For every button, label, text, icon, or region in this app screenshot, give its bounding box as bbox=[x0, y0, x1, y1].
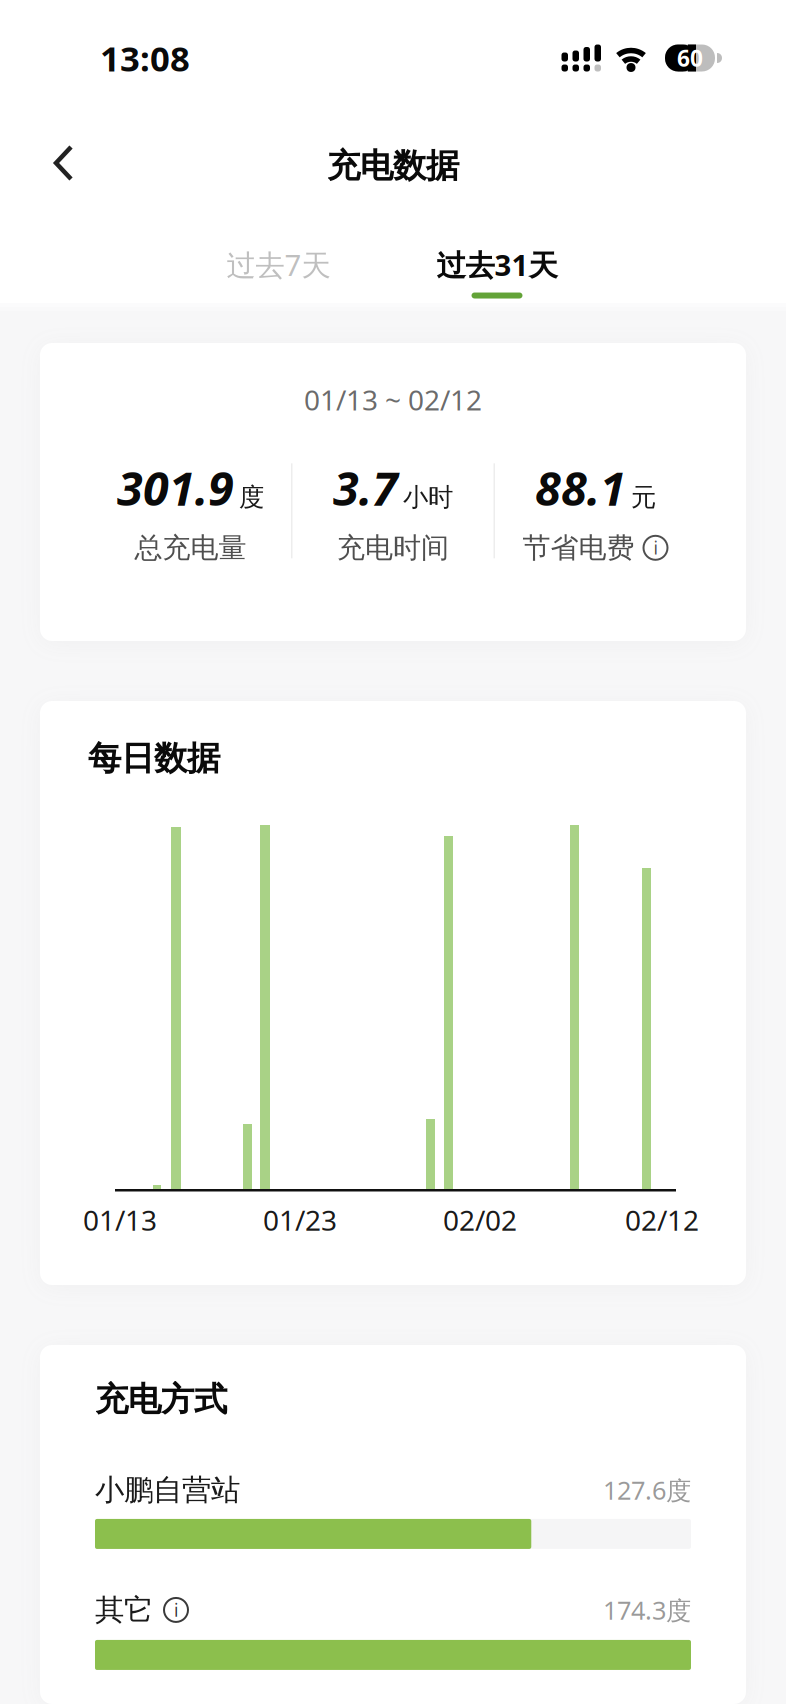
staticText: 3.7 bbox=[333, 457, 398, 519]
staticText: 301.9 bbox=[117, 457, 234, 519]
staticText: 其它 bbox=[95, 1592, 153, 1628]
button[interactable]: i bbox=[163, 1597, 189, 1623]
staticText: 13:08 bbox=[100, 35, 190, 81]
staticText: 充电方式 bbox=[95, 1379, 227, 1420]
staticText: i bbox=[174, 1598, 178, 1621]
staticText: 节省电费 bbox=[522, 531, 634, 565]
staticText: 02/12 bbox=[625, 1201, 699, 1239]
button[interactable]: 过去31天 bbox=[436, 245, 557, 284]
staticText: 小时 bbox=[403, 482, 453, 513]
staticText: 每日数据 bbox=[88, 738, 220, 779]
staticText: 174.3度 bbox=[603, 1593, 691, 1627]
staticText: 过去7天 bbox=[226, 245, 330, 284]
staticText: 度 bbox=[239, 482, 264, 513]
staticText: 充电数据 bbox=[327, 145, 459, 186]
staticText: 小鹏自营站 bbox=[95, 1472, 240, 1508]
staticText: 01/13 bbox=[83, 1201, 157, 1239]
staticText: 01/23 bbox=[263, 1201, 337, 1239]
staticText: 88.1 bbox=[535, 457, 626, 519]
staticText: 127.6度 bbox=[603, 1473, 691, 1507]
staticText: i bbox=[653, 536, 657, 559]
staticText: 充电时间 bbox=[337, 531, 449, 565]
staticText: 元 bbox=[631, 482, 656, 513]
staticText: 总充电量 bbox=[134, 531, 246, 565]
staticText: 02/02 bbox=[443, 1201, 517, 1239]
staticText: 60 bbox=[677, 43, 703, 73]
staticText: 过去31天 bbox=[436, 245, 557, 284]
staticText: 01/13 ~ 02/12 bbox=[304, 381, 482, 418]
button[interactable]: i bbox=[642, 535, 668, 561]
button[interactable]: 过去7天 bbox=[226, 245, 330, 284]
button[interactable] bbox=[0, 125, 76, 207]
